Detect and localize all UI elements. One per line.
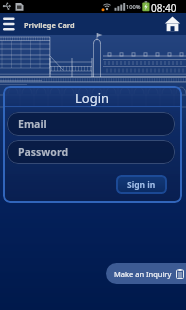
staticText: 08:40 bbox=[151, 1, 177, 14]
staticText: Email bbox=[18, 117, 47, 131]
button[interactable]: Password bbox=[7, 140, 175, 164]
staticText: Sign in bbox=[127, 179, 156, 191]
staticText: Login bbox=[75, 89, 110, 107]
staticText: 100% bbox=[126, 3, 141, 11]
button[interactable]: Email bbox=[7, 112, 175, 136]
staticText: Make an Inquiry bbox=[114, 269, 172, 279]
staticText: Password bbox=[18, 145, 69, 159]
button[interactable] bbox=[161, 13, 186, 35]
button[interactable]: Make an Inquiry bbox=[106, 263, 186, 284]
staticText: Privilege Card bbox=[24, 20, 75, 30]
button[interactable] bbox=[0, 13, 22, 35]
button[interactable]: Sign in bbox=[116, 175, 167, 194]
